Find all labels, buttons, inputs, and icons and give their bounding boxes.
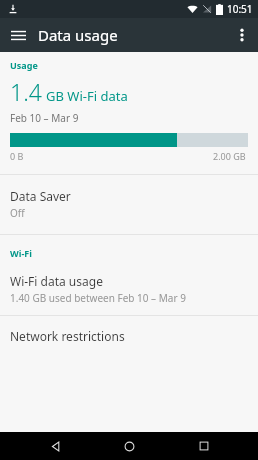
- staticText: 10:51: [227, 2, 253, 16]
- button[interactable]: Back: [35, 432, 75, 460]
- button[interactable]: Network restrictions: [0, 316, 258, 356]
- staticText: Data usage: [38, 25, 118, 45]
- staticText: GB Wi-Fi data: [46, 87, 128, 105]
- staticText: Network restrictions: [10, 328, 125, 344]
- button[interactable]: Recent apps: [184, 432, 224, 460]
- staticText: Off: [10, 206, 25, 220]
- button[interactable]: Open navigation drawer: [4, 21, 32, 49]
- staticText: 1.4: [10, 76, 42, 107]
- staticText: Wi-Fi data usage: [10, 273, 103, 289]
- staticText: 0 B: [10, 150, 24, 162]
- button[interactable]: Wi-Fi data usage: [0, 267, 258, 315]
- button[interactable]: Data Saver: [0, 175, 258, 234]
- staticText: Data Saver: [10, 188, 71, 204]
- button[interactable]: Home: [109, 432, 149, 460]
- button[interactable]: More options: [228, 21, 256, 49]
- staticText: Feb 10 – Mar 9: [10, 111, 79, 125]
- staticText: Usage: [10, 59, 38, 71]
- staticText: 1.40 GB used between Feb 10 – Mar 9: [10, 291, 186, 305]
- staticText: Wi-Fi: [10, 247, 32, 259]
- staticText: 2.00 GB: [213, 150, 246, 162]
